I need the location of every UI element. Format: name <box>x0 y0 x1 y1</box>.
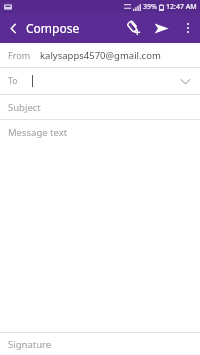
button[interactable]: Send <box>146 13 176 43</box>
button[interactable]: Signature <box>0 332 200 355</box>
staticText: Signature <box>8 338 52 351</box>
staticText: From <box>8 49 31 61</box>
button[interactable]: Message text <box>0 120 200 144</box>
button[interactable]: Back <box>0 13 26 43</box>
staticText: Subject <box>8 101 41 114</box>
button[interactable]: From <box>0 43 200 68</box>
staticText: 39% <box>143 2 157 12</box>
button[interactable]: To <box>0 68 200 95</box>
button[interactable]: Subject <box>0 95 200 120</box>
button[interactable]: Attach file <box>120 13 146 43</box>
staticText: kalysapps4570@gmail.com <box>40 49 161 62</box>
button[interactable]: Show CC and BCC <box>178 74 192 88</box>
staticText: To <box>8 75 18 87</box>
staticText: Message text <box>8 126 68 139</box>
staticText: 12:47 AM <box>166 2 197 12</box>
staticText: Compose <box>26 20 80 36</box>
button[interactable]: More options <box>176 13 200 43</box>
